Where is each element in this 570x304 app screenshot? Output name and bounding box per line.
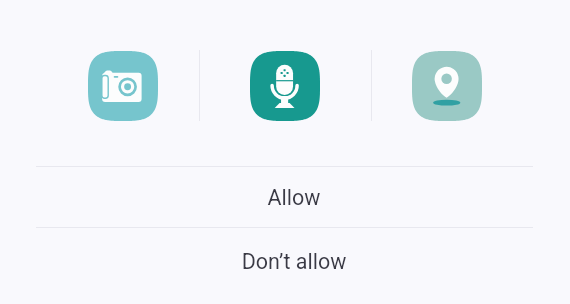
button[interactable]: Location permission xyxy=(412,51,482,121)
staticText: Don’t allow xyxy=(9,249,570,274)
button[interactable]: Allow xyxy=(0,166,570,228)
button[interactable]: Don’t allow xyxy=(0,227,570,289)
button[interactable]: Microphone permission xyxy=(250,51,320,121)
button[interactable]: Camera permission xyxy=(88,51,158,121)
staticText: Allow xyxy=(9,185,570,210)
